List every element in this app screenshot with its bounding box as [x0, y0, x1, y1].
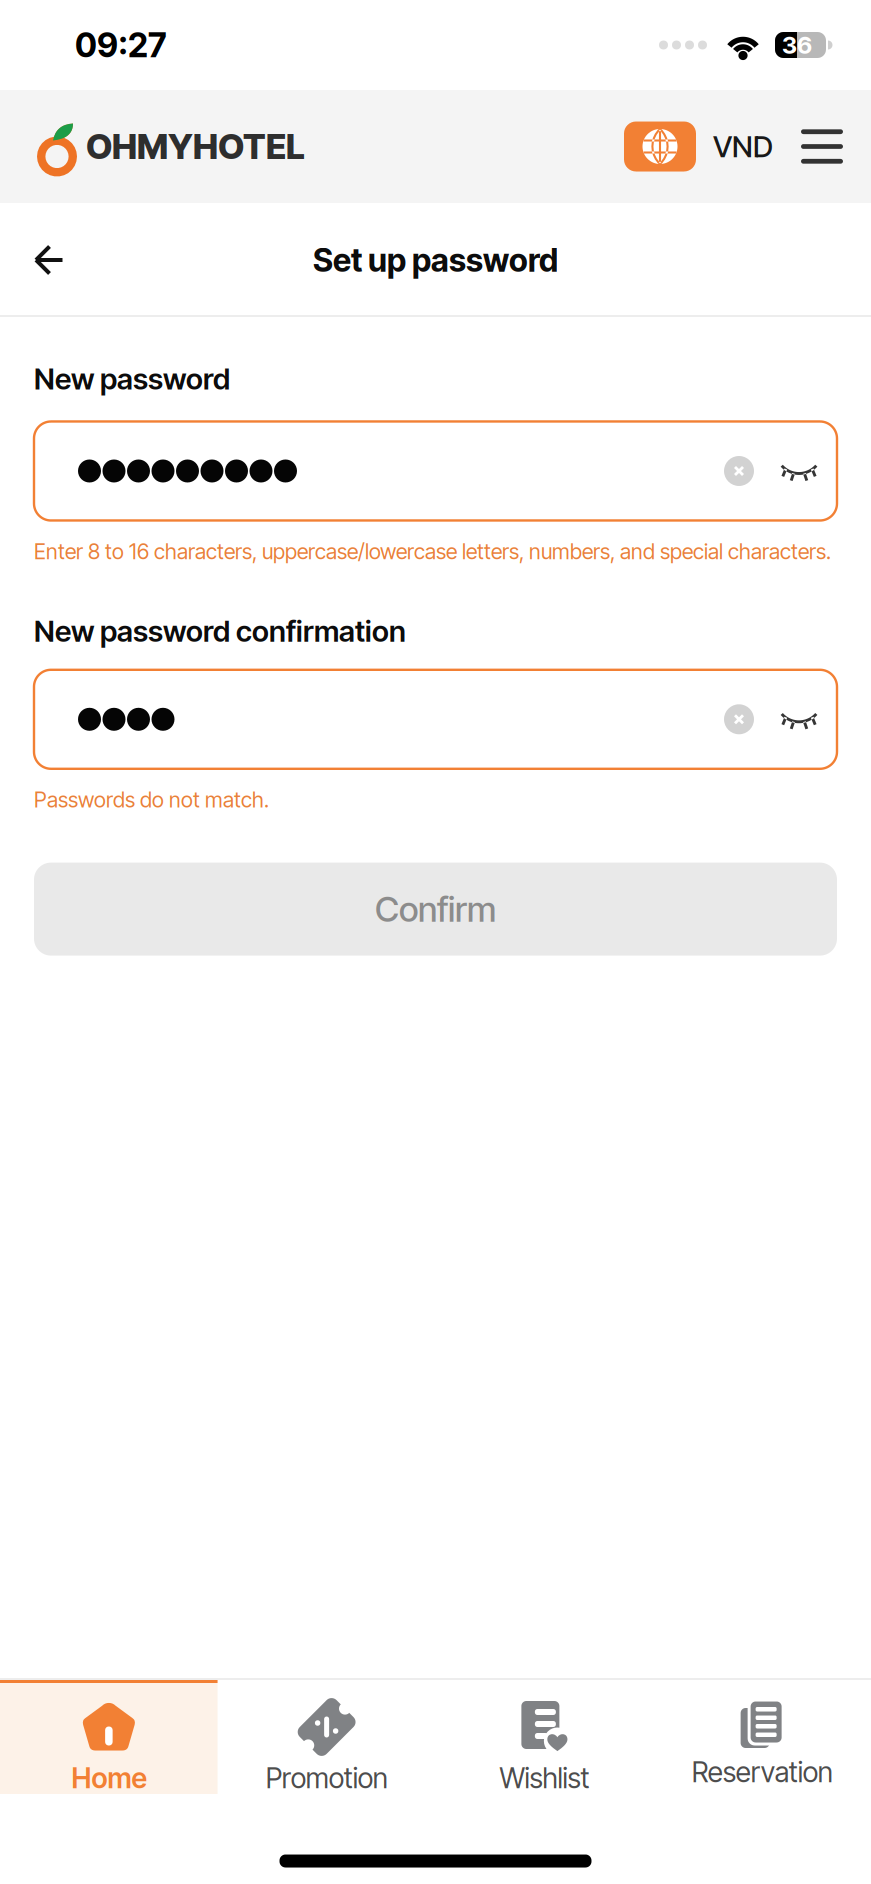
staticText: New password: [34, 361, 230, 396]
button[interactable]: Menu: [773, 115, 843, 177]
staticText: OHMYHOTEL: [86, 125, 305, 167]
button[interactable]: Wishlist: [435, 1678, 653, 1794]
staticText: Wishlist: [499, 1761, 589, 1795]
button[interactable]: Home: [0, 1678, 218, 1794]
button[interactable]: Promotion: [218, 1678, 436, 1794]
button[interactable]: VND: [624, 121, 773, 171]
button[interactable]: Show password: [764, 690, 815, 748]
staticText: Passwords do not match.: [34, 787, 269, 813]
staticText: Set up password: [313, 241, 558, 279]
staticText: 09:27: [75, 25, 166, 65]
staticText: 36: [782, 30, 812, 59]
button[interactable]: OhMyHotel home: [35, 116, 305, 176]
staticText: Home: [71, 1761, 146, 1795]
staticText: Promotion: [266, 1761, 388, 1795]
button[interactable]: Clear text: [714, 690, 764, 748]
button[interactable]: Confirm: [34, 863, 837, 956]
button[interactable]: Clear text: [714, 442, 764, 500]
button[interactable]: Show password: [764, 442, 815, 500]
staticText: Confirm: [375, 888, 496, 930]
staticText: Reservation: [692, 1755, 833, 1789]
button[interactable]: Reservation: [653, 1678, 871, 1794]
button[interactable]: Back: [0, 219, 91, 301]
staticText: New password confirmation: [34, 613, 406, 649]
staticText: Enter 8 to 16 characters, uppercase/lowe…: [34, 538, 831, 564]
staticText: VND: [713, 129, 773, 164]
